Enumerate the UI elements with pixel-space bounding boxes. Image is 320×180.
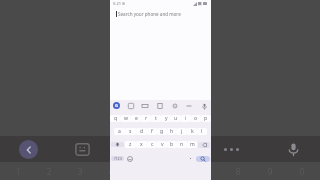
staticText: 8 bbox=[235, 165, 241, 177]
staticText: Search your phone and more bbox=[118, 11, 181, 17]
staticText: G bbox=[115, 103, 118, 108]
button[interactable]: a bbox=[114, 128, 125, 135]
button[interactable]: r bbox=[141, 115, 151, 122]
staticText: h bbox=[170, 128, 174, 135]
staticText: y bbox=[165, 115, 168, 122]
button[interactable]: Back bbox=[0, 136, 56, 162]
staticText: n bbox=[180, 141, 184, 148]
button[interactable]: s bbox=[125, 128, 136, 135]
button[interactable]: Search bbox=[196, 156, 210, 162]
button[interactable]: Search your phone and more bbox=[110, 7, 211, 20]
button[interactable]: Backspace bbox=[198, 142, 210, 148]
staticText: 2 bbox=[46, 165, 52, 177]
button[interactable]: Settings bbox=[171, 102, 179, 110]
button[interactable]: g bbox=[157, 128, 167, 135]
button[interactable]: y bbox=[161, 115, 171, 122]
staticText: 9 bbox=[267, 165, 273, 177]
button[interactable]: d bbox=[136, 128, 147, 135]
staticText: k bbox=[191, 128, 194, 135]
staticText: j bbox=[181, 128, 183, 135]
button[interactable]: k bbox=[187, 128, 197, 135]
button[interactable]: m bbox=[187, 141, 197, 148]
staticText: 5:21 bbox=[113, 1, 121, 6]
button[interactable]: Clipboard bbox=[156, 102, 164, 110]
button[interactable]: Stickers bbox=[127, 102, 135, 110]
button[interactable]: Voice input bbox=[200, 102, 208, 110]
button[interactable]: e bbox=[131, 115, 141, 122]
button[interactable] bbox=[185, 151, 195, 166]
staticText: 0 bbox=[299, 165, 305, 177]
staticText: t bbox=[155, 115, 157, 122]
staticText: i bbox=[185, 115, 187, 122]
button[interactable]: h bbox=[167, 128, 177, 135]
staticText: w bbox=[124, 115, 128, 122]
staticText: e bbox=[135, 115, 138, 122]
button[interactable]: Screenshot bbox=[108, 136, 138, 162]
button[interactable]: Shift bbox=[111, 142, 124, 147]
button[interactable]: GIF bbox=[141, 102, 149, 110]
button[interactable]: l bbox=[197, 128, 207, 135]
staticText: 4 bbox=[108, 165, 114, 177]
staticText: o bbox=[194, 115, 198, 122]
button[interactable]: o bbox=[191, 115, 201, 122]
button[interactable]: c bbox=[147, 141, 157, 148]
staticText: f bbox=[151, 128, 153, 135]
button[interactable]: u bbox=[171, 115, 181, 122]
staticText: l bbox=[201, 128, 203, 135]
button[interactable]: One-handed mode bbox=[185, 102, 193, 110]
button[interactable]: v bbox=[157, 141, 167, 148]
staticText: d bbox=[140, 128, 144, 135]
button[interactable]: Google bbox=[113, 102, 120, 109]
staticText: x bbox=[140, 141, 143, 148]
staticText: g bbox=[160, 128, 164, 135]
staticText: 1 bbox=[15, 165, 21, 177]
button[interactable]: i bbox=[181, 115, 191, 122]
staticText: z bbox=[129, 141, 132, 148]
button[interactable]: Emoji bbox=[125, 151, 135, 166]
button[interactable]: z bbox=[125, 141, 136, 148]
staticText: v bbox=[161, 141, 164, 148]
button[interactable]: j bbox=[177, 128, 187, 135]
button[interactable]: f bbox=[147, 128, 157, 135]
button[interactable]: p bbox=[201, 115, 211, 122]
staticText: q bbox=[114, 115, 118, 122]
staticText: ?123 bbox=[114, 156, 122, 161]
staticText: 3 bbox=[77, 165, 83, 177]
button[interactable]: q bbox=[110, 115, 121, 122]
staticText: p bbox=[204, 115, 208, 122]
button[interactable]: t bbox=[151, 115, 161, 122]
button[interactable]: w bbox=[121, 115, 131, 122]
staticText: c bbox=[151, 141, 154, 148]
button[interactable]: ?123 bbox=[111, 156, 124, 161]
button[interactable]: More options bbox=[196, 136, 266, 162]
staticText: r bbox=[145, 115, 148, 122]
button[interactable]: n bbox=[177, 141, 187, 148]
button[interactable]: Stickers bbox=[56, 136, 108, 162]
staticText: u bbox=[174, 115, 178, 122]
button[interactable]: b bbox=[167, 141, 177, 148]
staticText: m bbox=[190, 141, 195, 148]
staticText: s bbox=[129, 128, 132, 135]
staticText: b bbox=[170, 141, 174, 148]
button[interactable]: x bbox=[136, 141, 147, 148]
button[interactable]: Microphone bbox=[266, 136, 320, 162]
staticText: a bbox=[118, 128, 121, 135]
